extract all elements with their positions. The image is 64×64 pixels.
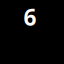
staticText: 6 [23,2,36,32]
